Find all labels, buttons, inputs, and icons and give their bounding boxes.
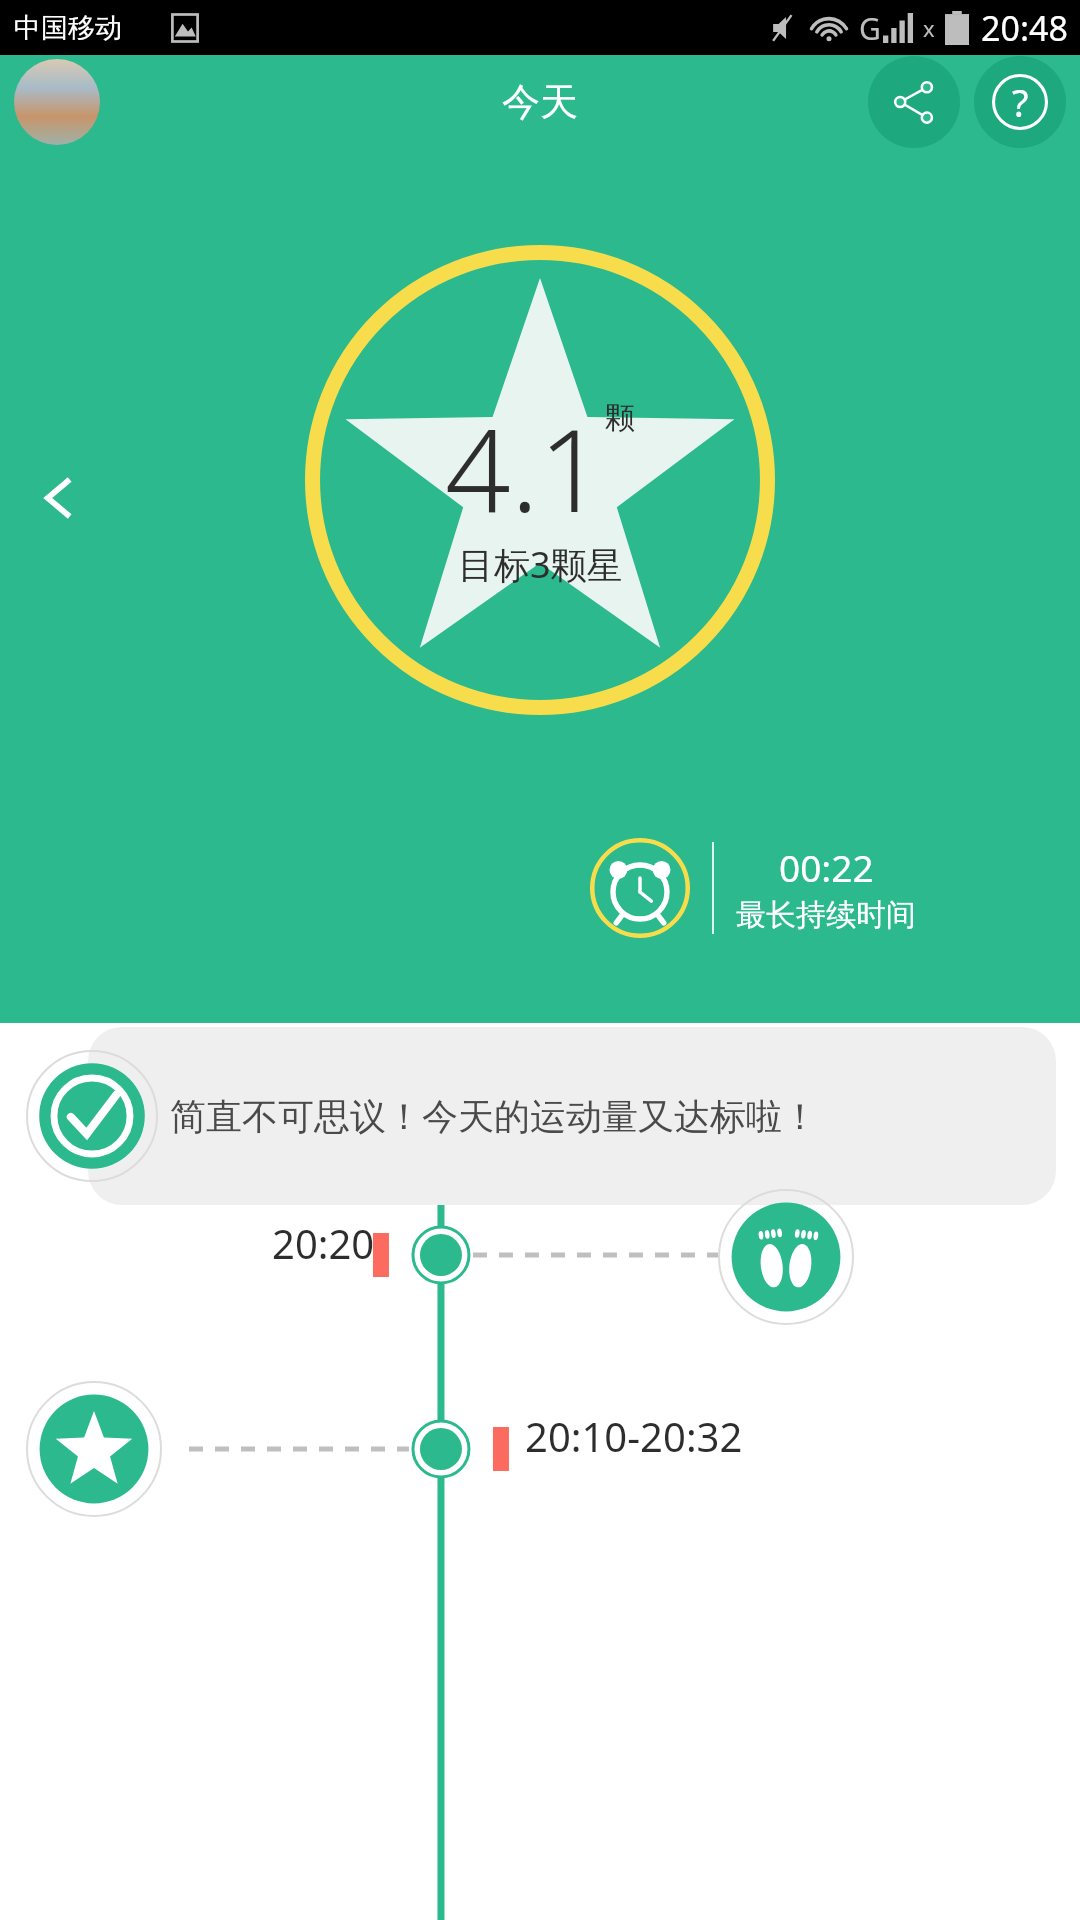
button[interactable]: Help [974,56,1066,148]
staticText: 最长持续时间 [736,896,916,934]
staticText: 20:48 [981,5,1068,51]
button[interactable]: Goal achieved [26,1050,158,1182]
button[interactable]: Profile [14,59,100,145]
staticText: x [923,13,935,43]
staticText: 20:10-20:32 [525,1409,743,1463]
staticText: 20:20 [272,1216,375,1270]
button[interactable]: Star earned [26,1381,162,1517]
button[interactable]: 简直不可思议！今天的运动量又达标啦！ [88,1027,1056,1205]
staticText: 今天 [502,78,578,126]
staticText: 颗 [605,399,635,437]
button[interactable]: Back [20,458,100,538]
button[interactable]: Longest duration [590,838,690,938]
staticText: 4.1 [445,389,605,546]
staticText: 中国移动 [14,11,122,45]
staticText: ? [1012,76,1029,128]
staticText: 00:22 [779,842,874,892]
staticText: G [859,8,881,49]
staticText: 目标3颗星 [458,540,623,589]
staticText: 简直不可思议！今天的运动量又达标啦！ [170,1094,818,1139]
button[interactable]: Share [868,56,960,148]
button[interactable]: Steps [718,1189,854,1325]
